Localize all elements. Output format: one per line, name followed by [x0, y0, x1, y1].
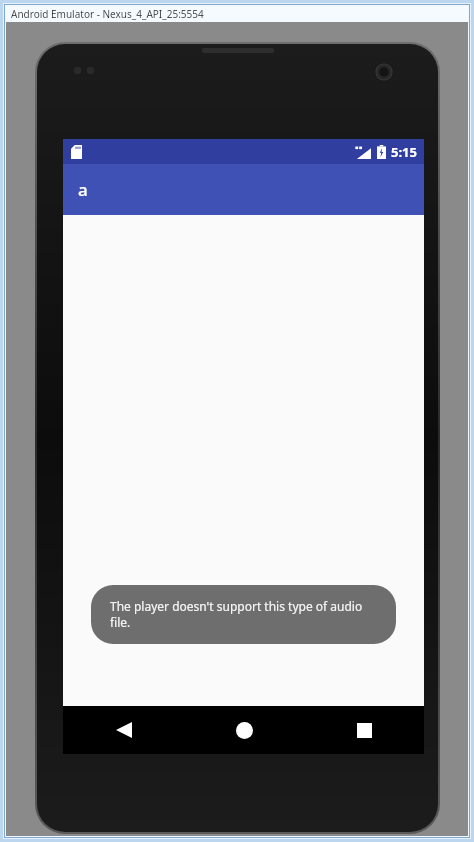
staticText: a: [78, 178, 88, 201]
staticText: Android Emulator - Nexus_4_API_25:5554: [11, 7, 204, 21]
button[interactable]: Home: [184, 706, 304, 754]
button[interactable]: Back: [63, 706, 184, 754]
staticText: 5:15: [391, 143, 417, 161]
button[interactable]: Recent apps: [304, 706, 424, 754]
staticText: The player doesn't support this type of …: [110, 598, 377, 631]
button[interactable]: a: [63, 164, 424, 215]
